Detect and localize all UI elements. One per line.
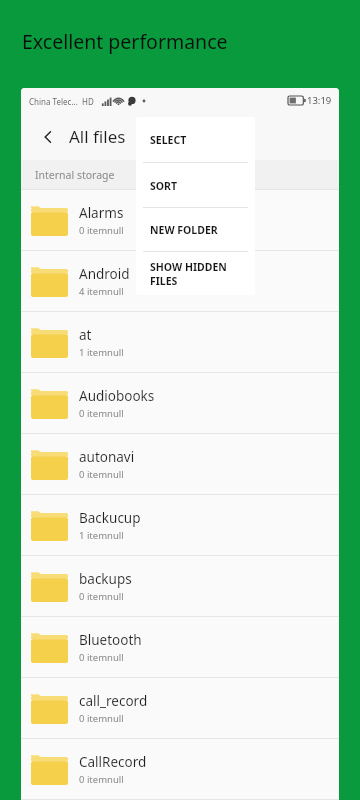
- staticText: at: [79, 326, 92, 344]
- staticText: Backucup: [79, 509, 141, 527]
- button[interactable]: at: [21, 312, 339, 373]
- staticText: All files: [69, 125, 126, 148]
- button[interactable]: Alarms: [21, 190, 339, 251]
- button[interactable]: NEW FOLDER: [136, 208, 255, 252]
- button[interactable]: SHOW HIDDEN FILES: [136, 252, 255, 295]
- staticText: 13:19: [307, 94, 332, 107]
- button[interactable]: SORT: [136, 163, 255, 208]
- button[interactable]: Back: [34, 123, 62, 151]
- staticText: autonavi: [79, 448, 135, 466]
- staticText: backups: [79, 570, 132, 588]
- staticText: 0 itemnull: [79, 224, 124, 237]
- staticText: call_record: [79, 692, 148, 710]
- staticText: 0 itemnull: [79, 407, 124, 420]
- staticText: 0 itemnull: [79, 773, 124, 786]
- staticText: Alarms: [79, 204, 124, 222]
- staticText: SHOW HIDDEN FILES: [150, 260, 227, 288]
- staticText: 0 itemnull: [79, 712, 124, 725]
- button[interactable]: SELECT: [136, 117, 255, 163]
- staticText: 1 itemnull: [79, 346, 124, 359]
- button[interactable]: backups: [21, 556, 339, 617]
- button[interactable]: Android: [21, 251, 339, 312]
- staticText: NEW FOLDER: [150, 223, 218, 237]
- staticText: China Telec...: [29, 96, 78, 107]
- staticText: SORT: [150, 179, 178, 193]
- button[interactable]: CallRecord: [21, 739, 339, 800]
- button[interactable]: Bluetooth: [21, 617, 339, 678]
- staticText: 0 itemnull: [79, 590, 124, 603]
- staticText: Audiobooks: [79, 387, 155, 405]
- staticText: CallRecord: [79, 753, 147, 771]
- staticText: SELECT: [150, 133, 187, 147]
- staticText: Internal storage: [35, 168, 115, 182]
- staticText: Bluetooth: [79, 631, 142, 649]
- staticText: 4 itemnull: [79, 285, 124, 298]
- staticText: Android: [79, 265, 130, 283]
- staticText: 0 itemnull: [79, 651, 124, 664]
- button[interactable]: autonavi: [21, 434, 339, 495]
- button[interactable]: call_record: [21, 678, 339, 739]
- staticText: 1 itemnull: [79, 529, 124, 542]
- button[interactable]: Audiobooks: [21, 373, 339, 434]
- staticText: Excellent performance: [22, 28, 228, 55]
- staticText: 0 itemnull: [79, 468, 124, 481]
- button[interactable]: Backucup: [21, 495, 339, 556]
- staticText: HD: [82, 96, 94, 107]
